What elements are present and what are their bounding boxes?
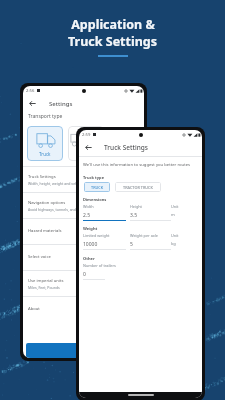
button[interactable]: Back xyxy=(28,99,37,108)
staticText: Truck xyxy=(39,151,51,157)
staticText: Height xyxy=(130,204,142,209)
staticText: Truck type xyxy=(83,175,105,180)
staticText: Select voice xyxy=(28,254,51,260)
staticText: 2:56 xyxy=(26,88,35,94)
staticText: TRUCK xyxy=(91,185,104,190)
staticText: Unit xyxy=(171,204,179,209)
button[interactable]: TRACTOR TRUCK xyxy=(115,182,161,192)
staticText: Width xyxy=(83,204,94,209)
staticText: TRACTOR TRUCK xyxy=(123,185,153,190)
staticText: Weight xyxy=(83,226,98,231)
button[interactable]: Hazard materials xyxy=(23,218,144,244)
staticText: Hazard materials xyxy=(28,228,62,234)
button[interactable] xyxy=(26,343,141,358)
staticText: Transport type xyxy=(28,113,63,120)
staticText: 2.5 xyxy=(83,212,91,219)
staticText: Navigation options xyxy=(28,200,66,206)
staticText: Use imperial units xyxy=(28,278,64,284)
staticText: Dimensions xyxy=(83,197,107,202)
button[interactable]: TRUCK xyxy=(84,182,110,192)
staticText: Truck Settings xyxy=(28,174,56,180)
button[interactable]: Truck xyxy=(27,126,63,161)
staticText: 10000 xyxy=(83,241,98,248)
staticText: Width, height, weight and vehi xyxy=(28,181,79,186)
staticText: Limited weight xyxy=(83,233,110,238)
staticText: Application & xyxy=(71,16,155,33)
staticText: Truck Settings xyxy=(68,33,157,50)
staticText: Weight per axle xyxy=(130,233,158,238)
staticText: Truck Settings xyxy=(104,143,148,152)
staticText: About xyxy=(28,306,40,312)
button[interactable]: Truck Settings xyxy=(23,166,144,192)
button[interactable]: Select voice xyxy=(23,244,144,270)
staticText: We'll use this information to suggest yo… xyxy=(83,162,191,168)
button[interactable]: About xyxy=(23,296,144,322)
button[interactable]: Navigation options xyxy=(23,192,144,218)
staticText: Miles, Feet, Pounds xyxy=(28,285,60,290)
staticText: 2:59 xyxy=(82,132,91,138)
button[interactable] xyxy=(68,126,104,161)
staticText: Number of trailers xyxy=(83,263,116,268)
button[interactable]: Use imperial units xyxy=(23,270,144,296)
button[interactable]: Back xyxy=(84,143,93,152)
staticText: Unit xyxy=(171,233,179,238)
staticText: 3.5 xyxy=(130,212,138,219)
staticText: Avoid highways, tunnels, and xyxy=(28,207,76,212)
staticText: 5 xyxy=(130,241,133,248)
staticText: Other xyxy=(83,256,95,261)
staticText: 0 xyxy=(83,271,86,278)
staticText: Settings xyxy=(49,100,73,108)
staticText: kg xyxy=(171,241,176,246)
staticText: m xyxy=(171,212,175,217)
